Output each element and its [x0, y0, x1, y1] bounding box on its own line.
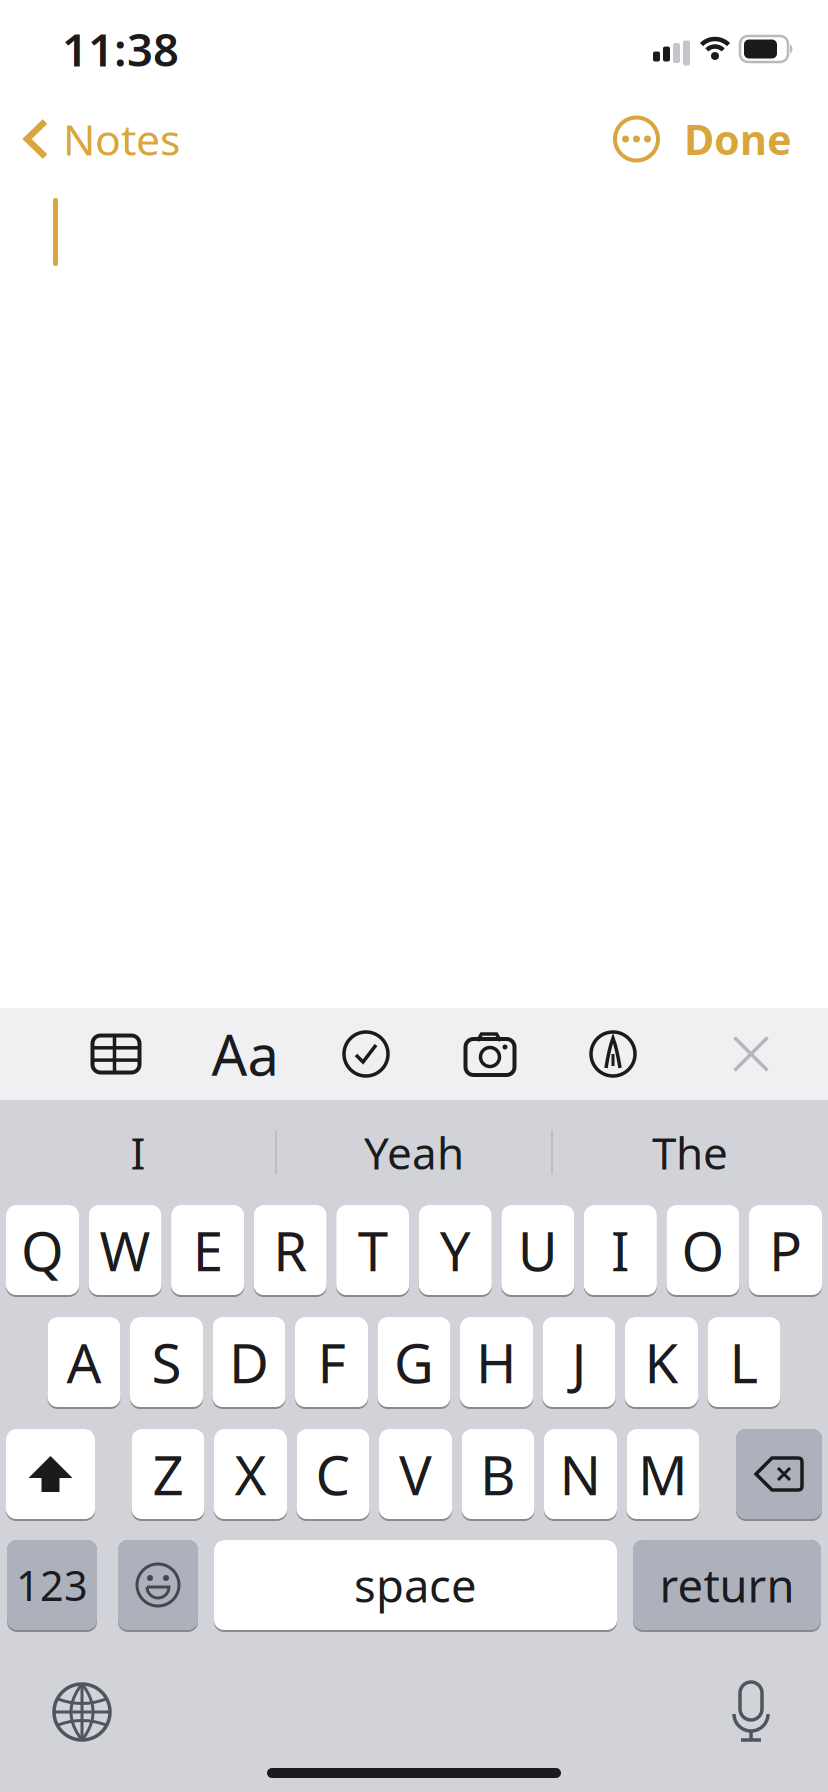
button[interactable] [455, 1008, 525, 1100]
button[interactable]: return [633, 1540, 821, 1632]
staticText: L [729, 1326, 758, 1398]
staticText: Yeah [364, 1123, 464, 1182]
button[interactable]: Notes [25, 111, 180, 167]
button[interactable]: J [542, 1317, 615, 1409]
staticText: R [273, 1214, 307, 1286]
staticText: return [659, 1555, 794, 1615]
staticText: S [151, 1326, 181, 1398]
staticText: E [193, 1214, 223, 1286]
button[interactable]: G [377, 1317, 450, 1409]
staticText: space [354, 1555, 477, 1615]
button[interactable]: A [47, 1317, 120, 1409]
button[interactable]: M [626, 1429, 699, 1521]
staticText: G [394, 1326, 434, 1398]
button[interactable] [615, 117, 658, 160]
button[interactable]: L [707, 1317, 780, 1409]
staticText: 123 [16, 1558, 88, 1612]
button[interactable]: D [212, 1317, 285, 1409]
button[interactable]: Yeah [276, 1100, 552, 1205]
staticText: W [100, 1214, 151, 1286]
staticText: B [480, 1438, 516, 1510]
button[interactable]: space [214, 1540, 617, 1632]
button[interactable] [54, 1684, 110, 1740]
staticText: V [399, 1438, 432, 1510]
staticText: F [317, 1326, 345, 1398]
staticText: Notes [63, 111, 180, 167]
button[interactable]: W [89, 1205, 162, 1297]
button[interactable]: O [666, 1205, 739, 1297]
button[interactable] [578, 1008, 648, 1100]
button[interactable]: K [625, 1317, 698, 1409]
staticText: The [652, 1123, 728, 1182]
staticText: I [611, 1214, 630, 1286]
staticText: C [315, 1438, 350, 1510]
button[interactable]: E [171, 1205, 244, 1297]
button[interactable]: I [584, 1205, 657, 1297]
staticText: J [571, 1326, 586, 1398]
staticText: X [234, 1438, 266, 1510]
staticText: D [229, 1326, 269, 1398]
staticText: T [358, 1214, 388, 1286]
staticText: A [66, 1326, 101, 1398]
button[interactable]: Z [131, 1429, 204, 1521]
button[interactable]: R [254, 1205, 327, 1297]
staticText: Y [440, 1214, 471, 1286]
button[interactable]: S [130, 1317, 203, 1409]
button[interactable] [118, 1540, 198, 1632]
button[interactable]: Done [658, 112, 828, 166]
staticText: M [638, 1438, 688, 1510]
button[interactable] [716, 1008, 786, 1100]
staticText: Aa [211, 1017, 278, 1091]
staticText: I [130, 1123, 145, 1182]
staticText: K [644, 1326, 678, 1398]
staticText: H [476, 1326, 517, 1398]
button[interactable]: N [544, 1429, 617, 1521]
staticText: 11:38 [62, 19, 179, 79]
button[interactable] [331, 1008, 401, 1100]
staticText: Q [21, 1214, 64, 1286]
button[interactable]: Q [6, 1205, 79, 1297]
button[interactable]: P [749, 1205, 822, 1297]
button[interactable] [6, 1429, 95, 1521]
button[interactable]: C [296, 1429, 369, 1521]
button[interactable]: H [460, 1317, 533, 1409]
button[interactable]: Aa [210, 1008, 280, 1100]
button[interactable]: B [461, 1429, 534, 1521]
button[interactable]: The [552, 1100, 828, 1205]
button[interactable]: I [0, 1100, 276, 1205]
button[interactable]: T [336, 1205, 409, 1297]
button[interactable] [81, 1008, 151, 1100]
staticText: Z [152, 1438, 183, 1510]
button[interactable] [736, 1429, 822, 1521]
button[interactable]: F [295, 1317, 368, 1409]
button[interactable] [734, 1682, 768, 1742]
staticText: O [681, 1214, 724, 1286]
button[interactable]: 123 [7, 1540, 97, 1632]
staticText: U [518, 1214, 558, 1286]
button[interactable]: X [214, 1429, 287, 1521]
staticText: N [559, 1438, 601, 1510]
button[interactable]: Y [419, 1205, 492, 1297]
button[interactable]: U [501, 1205, 574, 1297]
staticText: Done [684, 112, 792, 166]
staticText: P [769, 1214, 802, 1286]
button[interactable]: V [379, 1429, 452, 1521]
